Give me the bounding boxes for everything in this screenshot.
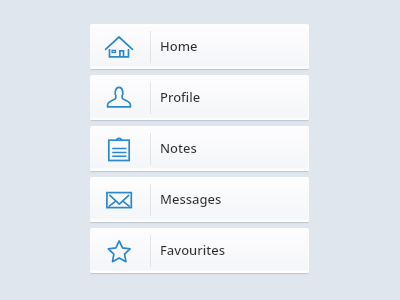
staticText: Favourites [160, 241, 226, 259]
button[interactable]: Home [90, 24, 309, 69]
button[interactable]: Notes [90, 126, 309, 171]
button[interactable]: Favourites [90, 228, 309, 273]
staticText: Messages [160, 190, 222, 208]
button[interactable]: Profile [90, 75, 309, 120]
button[interactable]: Messages [90, 177, 309, 222]
staticText: Home [160, 37, 198, 55]
staticText: Notes [160, 139, 197, 157]
staticText: Profile [160, 88, 201, 106]
